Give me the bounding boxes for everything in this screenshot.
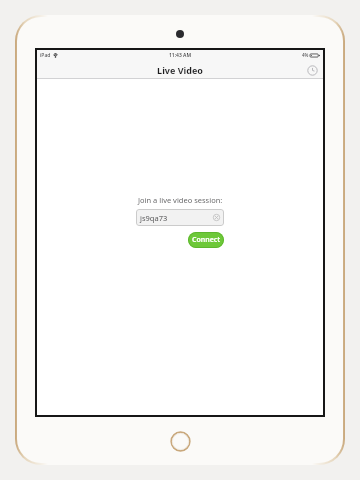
staticText: 4% — [302, 52, 309, 58]
staticText: Join a live video session: — [138, 195, 223, 205]
button[interactable]: Clear text — [213, 214, 220, 221]
staticText: 11:43 AM — [169, 52, 192, 59]
button[interactable]: Connect — [188, 232, 224, 248]
staticText: js9qa73 — [140, 213, 213, 223]
button[interactable]: History — [305, 63, 319, 77]
button[interactable]: Home — [170, 431, 191, 452]
staticText: Connect — [192, 235, 221, 245]
staticText: Live Video — [157, 64, 203, 76]
staticText: iPad — [40, 52, 51, 59]
button[interactable]: js9qa73 — [136, 209, 224, 226]
